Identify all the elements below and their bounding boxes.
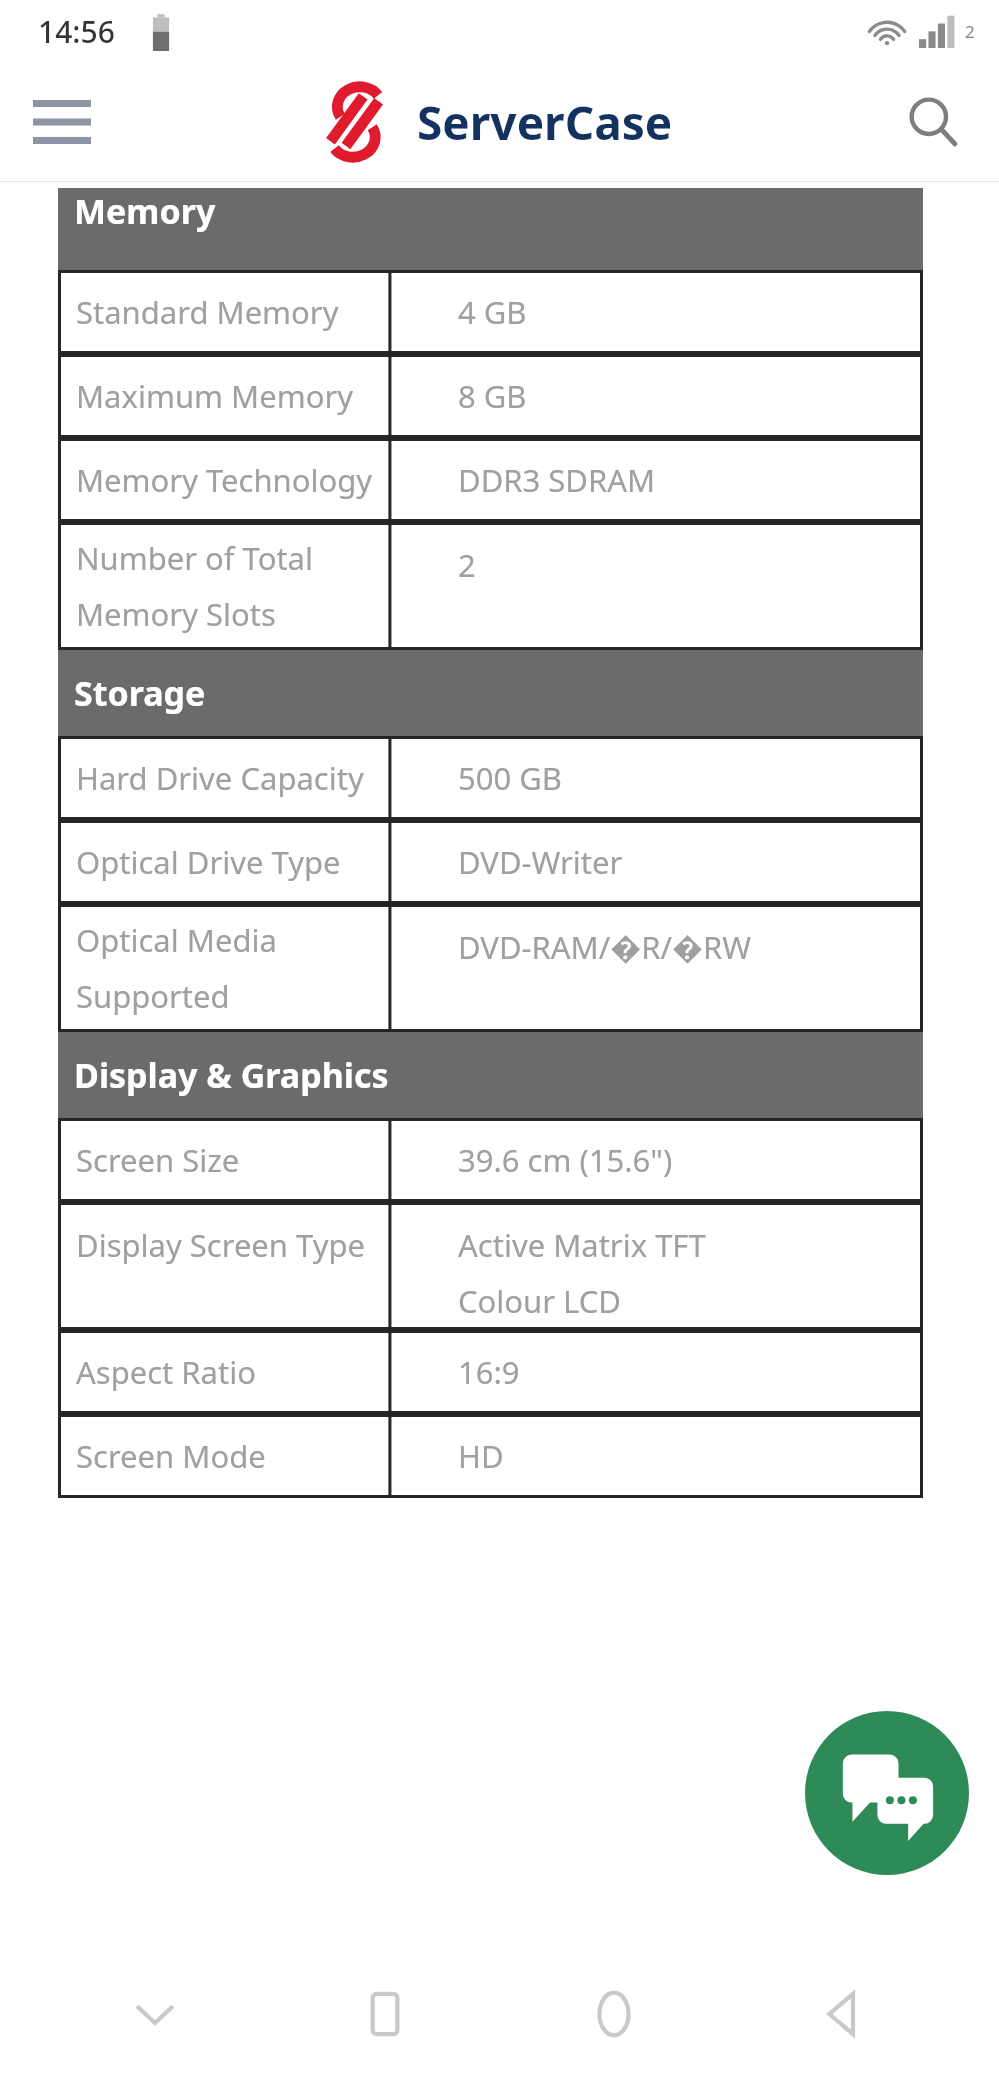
staticText: Aspect Ratio [76,1351,256,1393]
staticText: HD [458,1435,504,1477]
button[interactable]: Storage [58,650,923,736]
button[interactable]: Display & Graphics [58,1032,923,1118]
staticText: Optical Media [76,919,277,961]
staticText: 4 GB [458,291,527,333]
button[interactable]: Home [539,1949,689,2079]
staticText: Standard Memory [76,291,339,333]
staticText: 500 GB [458,757,562,799]
staticText: 2 [458,544,476,586]
staticText: Display Screen Type [76,1224,366,1266]
staticText: Screen Size [76,1139,240,1181]
staticText: ServerCase [417,91,673,154]
button[interactable]: Hide keyboard [80,1949,230,2079]
button[interactable]: Back [769,1949,919,2079]
staticText: DVD-Writer [458,841,623,883]
staticText: DVD-RAM/�R/�RW [458,926,752,968]
button[interactable]: Memory Technology [58,438,923,522]
button[interactable]: Chat [805,1711,969,1875]
staticText: Optical Drive Type [76,841,341,883]
button[interactable]: Number of Total [58,522,923,650]
button[interactable]: Aspect Ratio [58,1330,923,1414]
button[interactable]: Memory [58,188,923,270]
button[interactable]: Recents [310,1949,460,2079]
staticText: Display & Graphics [74,1052,389,1098]
button[interactable]: Hard Drive Capacity [58,736,923,820]
staticText: Active Matrix TFT [458,1224,706,1266]
staticText: 16:9 [458,1351,520,1393]
staticText: DDR3 SDRAM [458,459,656,501]
staticText: Storage [74,670,206,716]
button[interactable]: Screen Mode [58,1414,923,1498]
staticText: 14:56 [38,11,115,52]
button[interactable]: Optical Media [58,904,923,1032]
staticText: 8 GB [458,375,527,417]
button[interactable]: Screen Size [58,1118,923,1202]
staticText: 39.6 cm (15.6") [458,1139,673,1181]
button[interactable]: Optical Drive Type [58,820,923,904]
staticText: Number of Total [76,537,313,579]
staticText: Hard Drive Capacity [76,757,364,799]
staticText: Maximum Memory [76,375,354,417]
button[interactable]: Display Screen Type [58,1202,923,1330]
staticText: Colour LCD [458,1280,621,1322]
staticText: Supported [76,975,230,1017]
button[interactable]: Maximum Memory [58,354,923,438]
staticText: 2 [965,20,975,43]
staticText: Memory Technology [76,459,373,501]
staticText: Screen Mode [76,1435,266,1477]
button[interactable]: Search [889,78,977,166]
staticText: Memory Slots [76,593,276,635]
staticText: Memory [74,188,216,234]
button[interactable]: Standard Memory [58,270,923,354]
button[interactable]: Menu [20,80,104,164]
